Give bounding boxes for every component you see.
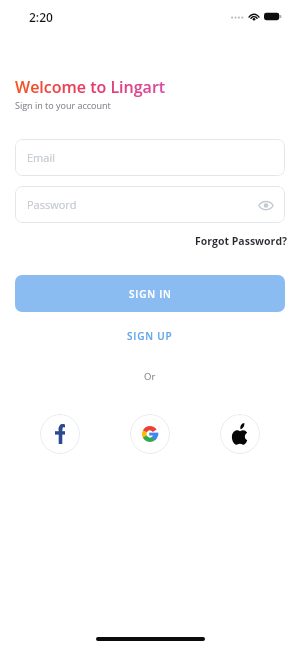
staticText: Password	[27, 197, 77, 212]
staticText: Email	[27, 150, 55, 165]
staticText: Or	[144, 370, 156, 383]
button[interactable]: Forgot Password?	[0, 234, 300, 248]
button[interactable]: SIGN UP	[119, 325, 181, 347]
staticText: 2:20	[29, 9, 53, 25]
staticText: SIGN UP	[127, 329, 173, 343]
button[interactable]: Password	[15, 186, 285, 223]
button[interactable]: Show password	[256, 195, 276, 215]
button[interactable]: SIGN IN	[15, 275, 285, 312]
button[interactable]: Sign in with Apple	[220, 414, 260, 454]
button[interactable]: Sign in with Facebook	[40, 414, 80, 454]
staticText: SIGN IN	[129, 287, 172, 301]
staticText: Forgot Password?	[195, 234, 288, 248]
staticText: Sign in to your account	[15, 99, 111, 111]
button[interactable]: Sign in with Google	[130, 414, 170, 454]
staticText: Welcome to Lingart	[15, 76, 166, 98]
button[interactable]: Email	[15, 139, 285, 176]
